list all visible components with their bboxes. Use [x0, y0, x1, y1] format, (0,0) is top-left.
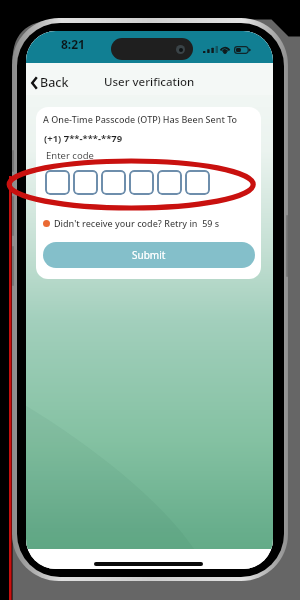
button[interactable]: Back [28, 71, 75, 94]
button[interactable] [73, 170, 98, 195]
staticText: Submit [132, 248, 166, 262]
staticText: Back [40, 74, 69, 91]
button[interactable] [45, 170, 70, 195]
staticText: (+1) 7**-***-**79 [44, 132, 123, 145]
button[interactable] [101, 170, 126, 195]
staticText: 8:21 [61, 36, 85, 52]
button[interactable] [185, 170, 210, 195]
staticText: Enter code [46, 149, 94, 162]
button[interactable]: Submit [43, 242, 255, 268]
staticText: Didn't receive your code? Retry in 59 s [54, 217, 220, 229]
button[interactable] [157, 170, 182, 195]
staticText: User verification [104, 74, 195, 90]
button[interactable] [129, 170, 154, 195]
staticText: A One-Time Passcode (OTP) Has Been Sent … [43, 113, 238, 125]
